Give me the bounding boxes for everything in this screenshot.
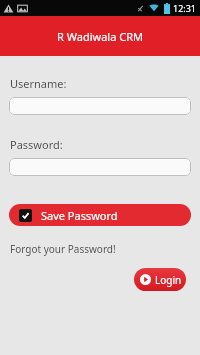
staticText: Save Password	[41, 208, 118, 223]
button[interactable]: Save Password	[9, 204, 191, 226]
button[interactable]	[9, 97, 191, 115]
staticText: Password:	[10, 137, 63, 152]
staticText: 12:31	[173, 2, 197, 14]
staticText: Login	[155, 273, 182, 287]
button[interactable]: Login	[134, 268, 186, 291]
staticText: R Wadiwala CRM	[57, 29, 143, 44]
button[interactable]: Forgot your Password!	[10, 242, 116, 256]
staticText: Username:	[10, 76, 67, 91]
button[interactable]	[9, 158, 191, 176]
